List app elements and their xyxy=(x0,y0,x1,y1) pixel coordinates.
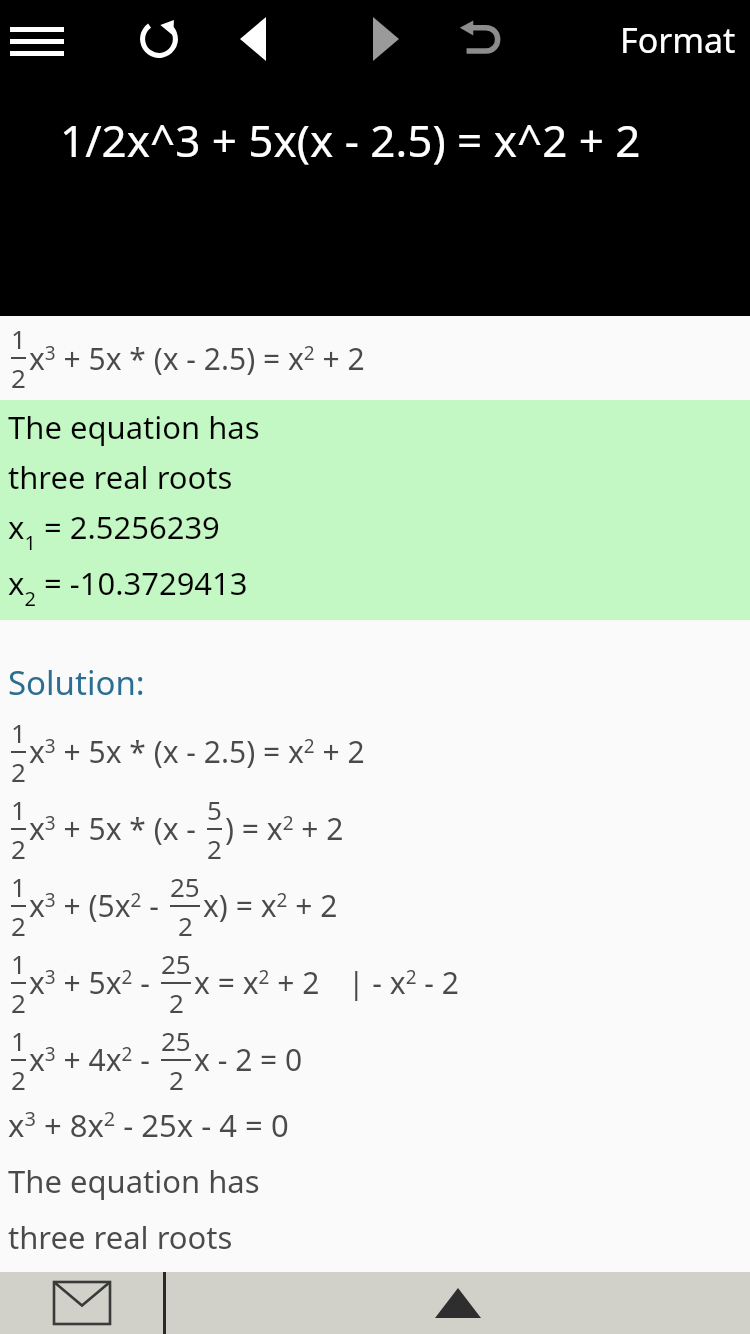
staticText: 2 xyxy=(169,985,184,1020)
staticText: 2 xyxy=(11,985,26,1020)
staticText: 2 xyxy=(178,908,193,943)
staticText: The equation has xyxy=(8,1160,260,1202)
staticText: 25 xyxy=(161,946,191,981)
staticText: 2 xyxy=(11,360,26,395)
button[interactable]: Menu xyxy=(6,8,68,70)
button[interactable]: Mail xyxy=(0,1272,163,1334)
button[interactable]: Undo xyxy=(447,6,513,72)
staticText: 2 xyxy=(11,831,26,866)
staticText: three real roots xyxy=(8,456,233,498)
staticText: x1 = 2.5256239 xyxy=(8,506,220,556)
staticText: 1 xyxy=(11,1023,26,1058)
staticText: 1 xyxy=(11,792,26,827)
button[interactable]: Previous xyxy=(222,8,284,70)
staticText: 25 xyxy=(170,869,200,904)
staticText: 2 xyxy=(11,908,26,943)
staticText: ) = x2 + 2 xyxy=(225,808,344,849)
staticText: 2 xyxy=(11,754,26,789)
staticText: x) = x2 + 2 xyxy=(203,885,338,926)
staticText: x3 + 8x2 - 25x - 4 = 0 xyxy=(8,1104,289,1146)
staticText: 2 xyxy=(11,1062,26,1097)
staticText: x3 + 5x * (x - 2.5) = x2 + 2 xyxy=(29,338,365,379)
staticText: 5 xyxy=(207,792,222,827)
staticText: three real roots xyxy=(8,1216,233,1258)
button[interactable]: Expand xyxy=(166,1272,750,1334)
button[interactable]: Format xyxy=(620,17,736,63)
staticText: x3 + 5x * (x - 2.5) = x2 + 2 xyxy=(29,731,365,772)
staticText: 1 xyxy=(11,946,26,981)
staticText: x2 = -10.3729413 xyxy=(8,562,248,612)
staticText: 25 xyxy=(161,1023,191,1058)
staticText: 2 xyxy=(207,831,222,866)
button[interactable]: Next xyxy=(355,8,417,70)
staticText: 1 xyxy=(11,869,26,904)
staticText: | - x2 - 2 xyxy=(348,962,459,1003)
button[interactable]: Refresh xyxy=(125,5,193,73)
staticText: x3 + (5x2 - xyxy=(29,885,167,926)
staticText: 1 xyxy=(11,321,26,356)
staticText: Solution: xyxy=(8,660,145,705)
staticText: 2 xyxy=(169,1062,184,1097)
staticText: x - 2 = 0 xyxy=(194,1039,303,1080)
staticText: 1 xyxy=(11,715,26,750)
staticText: 1/2x^3 + 5x(x - 2.5) = x^2 + 2 xyxy=(60,110,641,170)
staticText: x3 + 5x2 - xyxy=(29,962,158,1003)
staticText: Format xyxy=(620,17,736,63)
staticText: x3 + 5x * (x - xyxy=(29,808,204,849)
staticText: x3 + 4x2 - xyxy=(29,1039,158,1080)
staticText: x = x2 + 2 xyxy=(194,962,320,1003)
staticText: The equation has xyxy=(8,406,260,448)
